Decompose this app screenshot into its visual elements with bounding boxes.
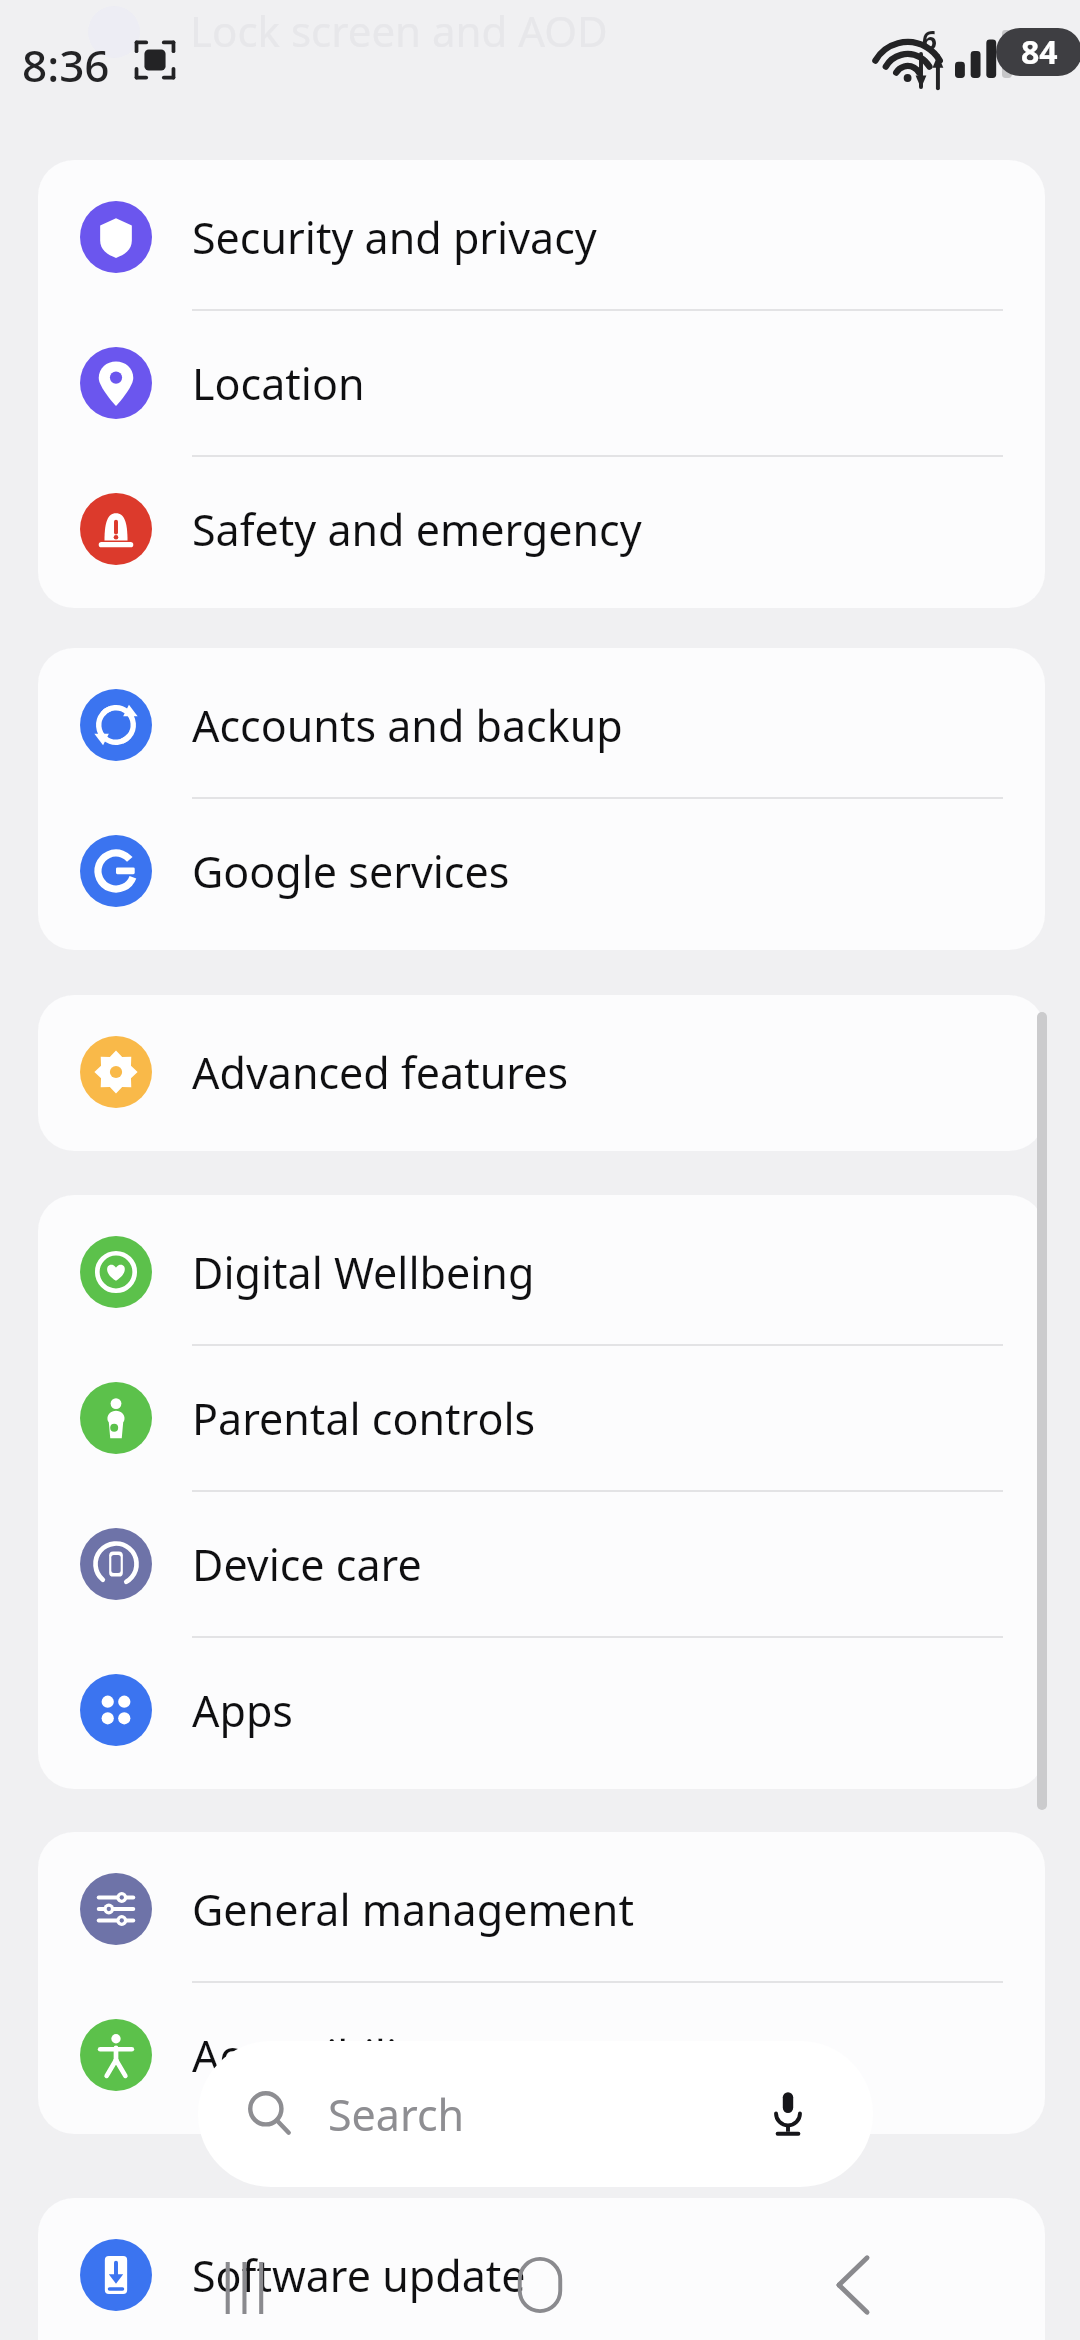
staticText: 8:36	[22, 35, 110, 95]
staticText: Digital Wellbeing	[192, 1243, 535, 1302]
staticText: 6	[922, 22, 937, 57]
staticText: Security and privacy	[192, 208, 597, 267]
button[interactable]: Back	[808, 2240, 898, 2330]
staticText: Device care	[192, 1535, 422, 1594]
staticText: Accounts and backup	[192, 696, 623, 755]
button[interactable]: Device care	[38, 1492, 1045, 1636]
staticText: Advanced features	[192, 1043, 568, 1102]
staticText: Google services	[192, 842, 510, 901]
button[interactable]: Digital Wellbeing	[38, 1200, 1045, 1344]
button[interactable]: Safety and emergency	[38, 457, 1045, 601]
staticText: Apps	[192, 1681, 293, 1740]
button[interactable]: Software update	[38, 2203, 1045, 2340]
button[interactable]: Security and privacy	[38, 165, 1045, 309]
button[interactable]: Parental controls	[38, 1346, 1045, 1490]
button[interactable]: Voice search	[758, 2084, 818, 2144]
button[interactable]: Location	[38, 311, 1045, 455]
button[interactable]: Accessibility	[38, 1983, 1045, 2127]
staticText: Search	[328, 2085, 465, 2144]
button[interactable]: Google services	[38, 799, 1045, 943]
staticText: General management	[192, 1880, 634, 1939]
button[interactable]: Apps	[38, 1638, 1045, 1782]
button[interactable]: Home	[495, 2240, 585, 2330]
button[interactable]: Recents	[200, 2248, 290, 2328]
button[interactable]: Advanced features	[38, 1000, 1045, 1144]
button[interactable]: General management	[38, 1837, 1045, 1981]
staticText: Safety and emergency	[192, 500, 642, 559]
button[interactable]: Accounts and backup	[38, 653, 1045, 797]
staticText: Parental controls	[192, 1389, 536, 1448]
staticText: Accessibility	[192, 2026, 435, 2085]
staticText: Location	[192, 354, 365, 413]
button[interactable]: Search	[198, 2041, 873, 2187]
staticText: Lock screen and AOD	[190, 2, 608, 59]
staticText: Software update	[192, 2246, 526, 2305]
staticText: 84	[1021, 30, 1058, 74]
